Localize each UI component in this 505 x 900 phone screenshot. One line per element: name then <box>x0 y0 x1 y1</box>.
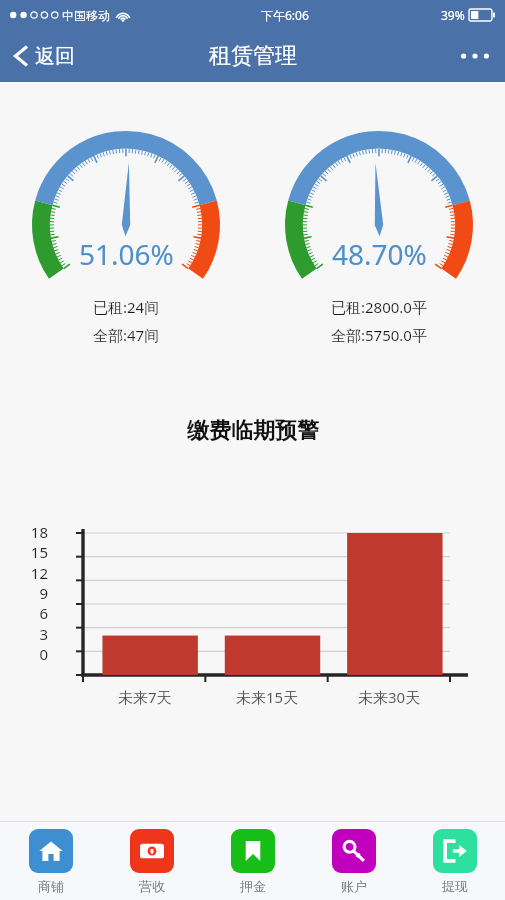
staticText: 商铺 <box>38 878 64 894</box>
button[interactable]: 账户 <box>303 822 404 900</box>
staticText: 未来30天 <box>358 687 421 707</box>
staticText: 返回 <box>35 44 75 69</box>
staticText: 未来7天 <box>118 687 172 707</box>
staticText: 全部:5750.0平 <box>331 325 427 345</box>
staticText: 中国移动 <box>62 8 110 23</box>
staticText: 下午6:06 <box>261 7 309 23</box>
staticText: 缴费临期预警 <box>187 417 319 445</box>
staticText: 15 <box>30 542 48 562</box>
button[interactable]: 营收 <box>101 822 202 900</box>
staticText: 12 <box>30 563 48 583</box>
button[interactable]: 商铺 <box>0 822 101 900</box>
button[interactable]: 返回 <box>0 30 89 82</box>
staticText: 0 <box>39 644 48 664</box>
staticText: 已租:2800.0平 <box>331 297 427 317</box>
staticText: 账户 <box>341 878 367 894</box>
button[interactable]: 押金 <box>202 822 303 900</box>
staticText: 租赁管理 <box>209 42 297 70</box>
staticText: 提现 <box>442 878 468 894</box>
staticText: 18 <box>30 522 48 542</box>
staticText: 全部:47间 <box>93 325 160 345</box>
staticText: 已租:24间 <box>93 297 160 317</box>
staticText: 押金 <box>240 878 266 894</box>
staticText: 营收 <box>139 878 165 894</box>
button[interactable]: 提现 <box>404 822 505 900</box>
staticText: 6 <box>39 603 48 623</box>
staticText: 39% <box>441 7 465 23</box>
staticText: 9 <box>39 583 48 603</box>
button[interactable]: More options <box>445 30 505 82</box>
staticText: 48.70% <box>332 235 427 273</box>
staticText: 51.06% <box>79 235 174 273</box>
staticText: 未来15天 <box>236 687 299 707</box>
staticText: 3 <box>39 624 48 644</box>
